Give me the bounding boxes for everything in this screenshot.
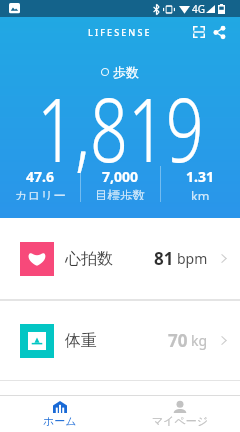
staticText: bpm [177, 249, 208, 268]
staticText: 目標歩数 [95, 188, 145, 200]
staticText: kg [191, 331, 208, 350]
staticText: 47.6 [26, 167, 54, 186]
staticText: LIFESENSE [88, 26, 152, 38]
staticText: ホーム [43, 414, 77, 428]
staticText: カロリー [15, 188, 66, 200]
staticText: 心拍数 [65, 249, 113, 269]
staticText: 7,000 [102, 167, 139, 186]
staticText: km [191, 188, 210, 200]
staticText: 81 [154, 247, 174, 270]
staticText: 4G [192, 2, 205, 16]
staticText: 1,819 [37, 68, 204, 188]
button[interactable]: Share [209, 22, 229, 42]
staticText: マイページ [152, 414, 209, 428]
button[interactable]: 体重 [0, 301, 240, 380]
button[interactable]: ホーム [0, 396, 120, 432]
button[interactable]: 心拍数 [0, 218, 240, 299]
button[interactable]: Scan QR code [189, 22, 209, 42]
staticText: 歩数 [113, 64, 139, 80]
staticText: 体重 [65, 331, 97, 351]
staticText: 1.31 [186, 167, 214, 186]
button[interactable]: マイページ [120, 396, 240, 432]
staticText: 70 [168, 329, 188, 352]
